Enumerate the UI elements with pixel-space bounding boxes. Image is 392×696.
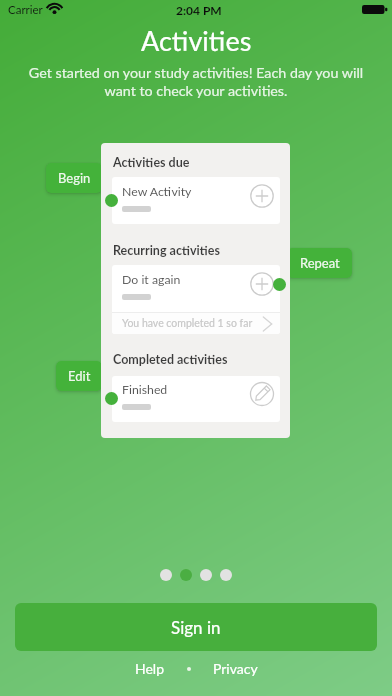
button[interactable]: Add activity <box>250 272 274 296</box>
button[interactable] <box>220 569 232 581</box>
button[interactable]: New Activity <box>112 177 280 224</box>
staticText: Recurring activities <box>113 243 220 258</box>
button[interactable]: Edit activity <box>250 382 274 406</box>
button[interactable] <box>200 569 212 581</box>
staticText: Edit <box>68 368 91 384</box>
button[interactable]: Privacy <box>191 654 280 683</box>
button[interactable]: Sign in <box>15 603 377 651</box>
button[interactable]: Help <box>113 654 187 683</box>
staticText: Finished <box>122 382 168 397</box>
button[interactable]: Begin <box>46 163 102 193</box>
button[interactable] <box>180 569 192 581</box>
button[interactable]: Add activity <box>250 184 274 208</box>
staticText: Carrier <box>8 3 43 17</box>
staticText: Begin <box>58 170 91 186</box>
button[interactable]: You have completed 1 so far <box>112 313 280 334</box>
button[interactable]: Do it again <box>112 265 280 312</box>
staticText: Do it again <box>122 272 181 287</box>
button[interactable]: Edit <box>56 361 102 391</box>
button[interactable]: Repeat <box>287 248 352 278</box>
button[interactable] <box>160 569 172 581</box>
staticText: Activities due <box>113 155 190 170</box>
staticText: Repeat <box>300 255 340 271</box>
staticText: Privacy <box>213 660 258 677</box>
staticText: Get started on your study activities! Ea… <box>26 64 366 99</box>
staticText: Help <box>135 660 165 677</box>
staticText: Activities <box>141 24 252 56</box>
button[interactable]: Finished <box>112 376 280 422</box>
staticText: 2:04 PM <box>176 3 222 17</box>
staticText: Sign in <box>171 617 221 637</box>
staticText: You have completed 1 so far <box>122 317 261 330</box>
staticText: Completed activities <box>113 352 228 367</box>
staticText: New Activity <box>122 184 192 199</box>
